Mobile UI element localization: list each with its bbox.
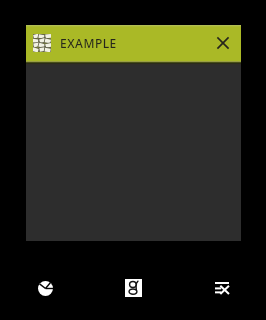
button[interactable]: Google — [88, 276, 177, 300]
staticText: EXAMPLE — [60, 35, 117, 51]
button[interactable]: Charts — [0, 276, 88, 300]
button[interactable]: Close — [210, 30, 236, 56]
button[interactable]: Clear list — [177, 276, 266, 300]
